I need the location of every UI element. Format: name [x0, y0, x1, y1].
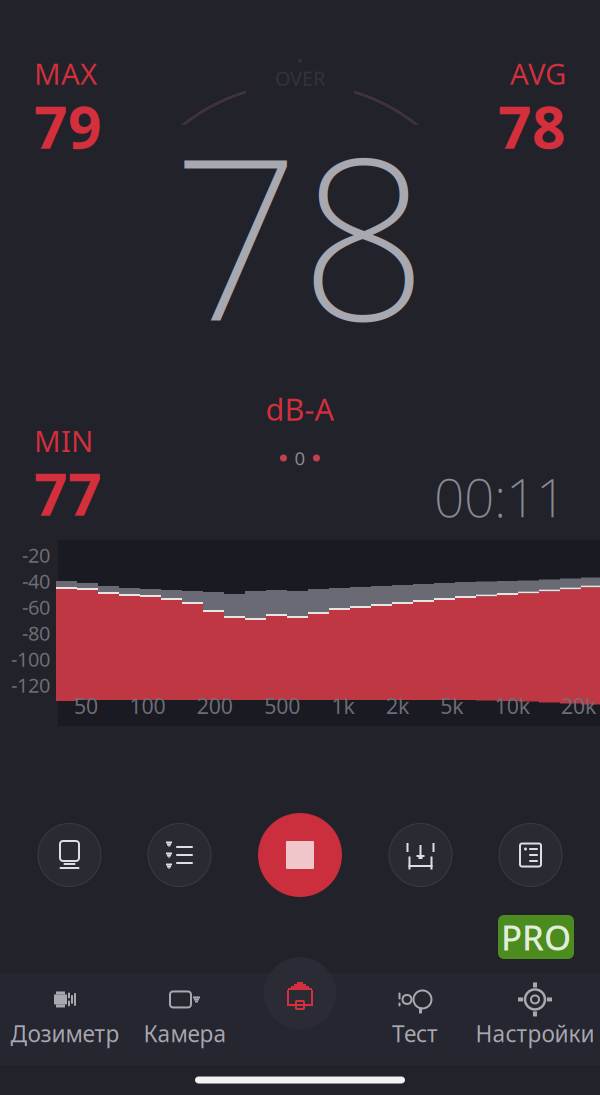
staticText: AVG — [510, 54, 566, 93]
button[interactable]: Home — [264, 957, 336, 1029]
staticText: -120 — [11, 672, 50, 698]
button[interactable]: Measurement list — [148, 823, 211, 886]
staticText: 78 — [498, 87, 566, 165]
staticText: dB-A — [265, 388, 334, 429]
staticText: 0 — [294, 446, 305, 470]
staticText: 500 — [264, 692, 300, 720]
staticText: 2k — [386, 692, 409, 720]
staticText: Камера — [143, 1018, 226, 1048]
staticText: MIN — [34, 421, 93, 460]
staticText: Настройки — [475, 1018, 594, 1048]
button[interactable]: Дозиметр — [5, 981, 125, 1053]
staticText: -20 — [22, 542, 50, 568]
button[interactable]: Save measurement — [389, 823, 452, 886]
button[interactable]: Stop recording — [258, 813, 342, 897]
staticText: 100 — [129, 692, 165, 720]
staticText: -100 — [11, 646, 50, 672]
staticText: 20k — [561, 692, 596, 720]
button[interactable]: PRO — [498, 915, 574, 959]
staticText: PRO — [501, 914, 571, 960]
button[interactable]: Report — [499, 823, 562, 886]
staticText: MAX — [34, 54, 97, 93]
staticText: 10k — [495, 692, 530, 720]
staticText: OVER — [275, 65, 325, 91]
button[interactable]: Тест — [355, 981, 475, 1053]
staticText: 5k — [440, 692, 463, 720]
staticText: 77 — [34, 454, 102, 532]
button[interactable]: Камера — [125, 981, 245, 1053]
button[interactable]: Настройки — [475, 981, 595, 1053]
staticText: Дозиметр — [10, 1018, 119, 1048]
staticText: 00:11 — [434, 461, 566, 532]
staticText: 200 — [197, 692, 233, 720]
staticText: -40 — [22, 568, 50, 594]
staticText: 78 — [172, 85, 428, 382]
staticText: Тест — [392, 1018, 438, 1048]
staticText: -80 — [22, 620, 50, 646]
staticText: 79 — [34, 87, 102, 165]
staticText: -60 — [22, 594, 50, 620]
staticText: 50 — [74, 692, 98, 720]
button[interactable]: Calibrate — [38, 823, 101, 886]
staticText: 1k — [331, 692, 354, 720]
